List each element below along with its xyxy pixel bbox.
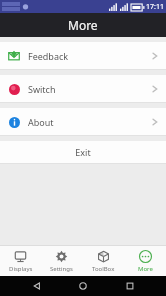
staticText: About (28, 116, 54, 128)
staticText: ToolBox (92, 265, 115, 273)
button[interactable]: ToolBox (82, 246, 124, 276)
button[interactable]: About (0, 108, 166, 135)
button[interactable]: Settings (41, 246, 82, 276)
button[interactable]: Exit (0, 141, 166, 163)
button[interactable]: Recents (120, 276, 140, 296)
staticText: More (138, 265, 153, 273)
staticText: Switch (28, 83, 56, 95)
staticText: More (68, 17, 98, 33)
button[interactable]: Displays (0, 246, 41, 276)
staticText: Settings (50, 265, 73, 273)
staticText: Exit (75, 146, 91, 158)
button[interactable]: Back (27, 276, 47, 296)
button[interactable]: Switch (0, 75, 166, 102)
button[interactable]: Feedback (0, 42, 166, 69)
button[interactable]: Home (73, 276, 93, 296)
staticText: Displays (9, 265, 33, 273)
button[interactable]: More (124, 246, 166, 276)
staticText: 17:11 (146, 2, 164, 12)
staticText: Feedback (28, 50, 69, 62)
